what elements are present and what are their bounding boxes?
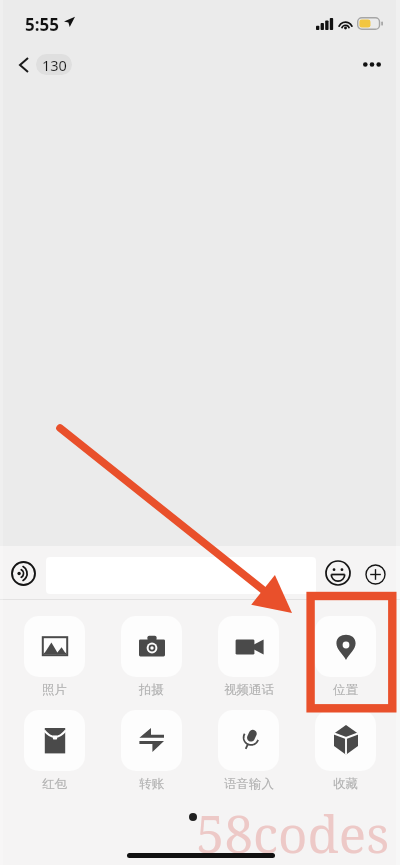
button[interactable]: More options	[356, 48, 388, 80]
staticText: 语音输入	[224, 776, 274, 792]
button[interactable]: Emoji	[322, 557, 354, 589]
staticText: 视频通话	[224, 682, 274, 698]
staticText: 收藏	[333, 776, 358, 792]
button[interactable]: 拍摄	[109, 616, 194, 698]
staticText: 位置	[333, 682, 358, 698]
staticText: 58codes	[196, 798, 390, 865]
button[interactable]: 转账	[109, 710, 194, 792]
button[interactable]: More functions	[360, 559, 390, 589]
button[interactable]: 130	[19, 54, 72, 75]
button[interactable]: 位置	[303, 616, 388, 698]
button[interactable]: Voice message	[7, 557, 39, 589]
staticText: 130	[42, 55, 67, 75]
staticText: 照片	[42, 682, 67, 698]
staticText: 转账	[139, 776, 164, 792]
staticText: 拍摄	[139, 682, 164, 698]
button[interactable]	[46, 557, 316, 594]
button[interactable]: 红包	[12, 710, 97, 792]
staticText: 红包	[42, 776, 67, 792]
button[interactable]: 语音输入	[206, 710, 291, 792]
button[interactable]: 视频通话	[206, 616, 291, 698]
staticText: 5:55	[25, 13, 59, 36]
button[interactable]: 收藏	[303, 710, 388, 792]
button[interactable]: 照片	[12, 616, 97, 698]
